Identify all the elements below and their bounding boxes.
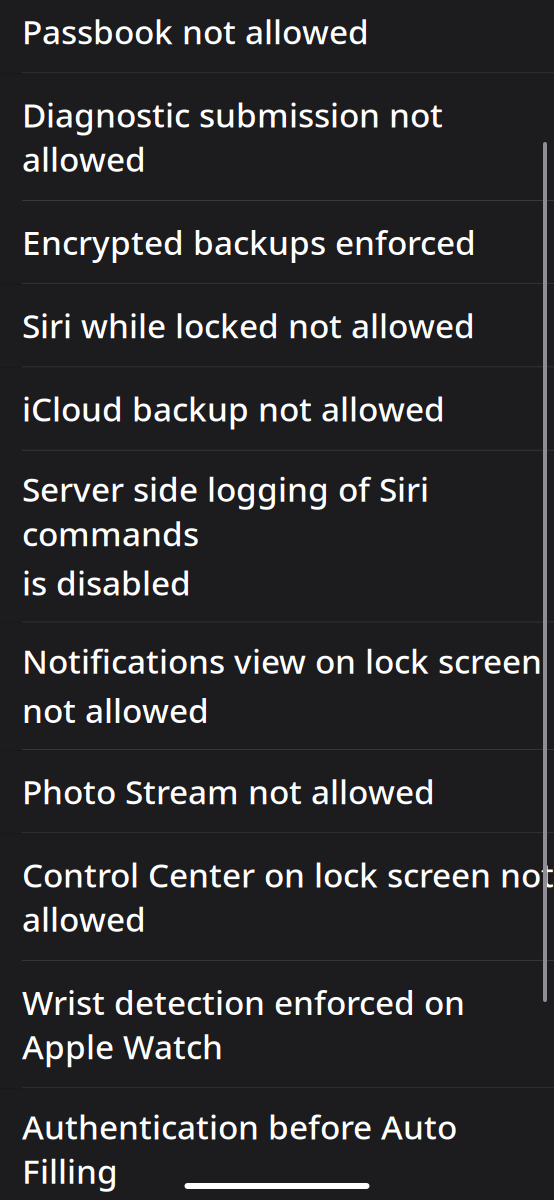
staticText: is disabled xyxy=(22,560,191,605)
button[interactable]: Passbook not allowed xyxy=(0,0,554,73)
button[interactable]: Control Center on lock screen not allowe… xyxy=(0,833,554,961)
button[interactable]: Photo Stream not allowed xyxy=(0,750,554,833)
staticText: Server side logging of Siri commands xyxy=(22,467,429,555)
staticText: Photo Stream not allowed xyxy=(22,769,435,813)
button[interactable]: Encrypted backups enforced xyxy=(0,201,554,284)
staticText: Siri while locked not allowed xyxy=(22,303,475,348)
button[interactable]: Siri while locked not allowed xyxy=(0,284,554,368)
staticText: iCloud backup not allowed xyxy=(22,386,445,431)
button[interactable]: Authentication before Auto Filling xyxy=(0,1088,554,1200)
staticText: not allowed xyxy=(22,688,209,732)
staticText: Wrist detection enforced on Apple Watch xyxy=(22,980,465,1068)
button[interactable]: iCloud backup not allowed xyxy=(0,367,554,451)
staticText: Encrypted backups enforced xyxy=(22,220,476,264)
staticText: Diagnostic submission not allowed xyxy=(22,92,443,181)
staticText: Notifications view on lock screen xyxy=(22,639,542,683)
button[interactable]: Wrist detection enforced on Apple Watch xyxy=(0,961,554,1088)
staticText: Passbook not allowed xyxy=(22,9,369,53)
button[interactable]: Server side logging of Siri commands xyxy=(0,451,554,623)
staticText: Authentication before Auto Filling xyxy=(22,1104,457,1193)
button[interactable]: Diagnostic submission not allowed xyxy=(0,73,554,201)
staticText: Control Center on lock screen not allowe… xyxy=(22,852,554,941)
button[interactable]: Notifications view on lock screen xyxy=(0,623,554,750)
